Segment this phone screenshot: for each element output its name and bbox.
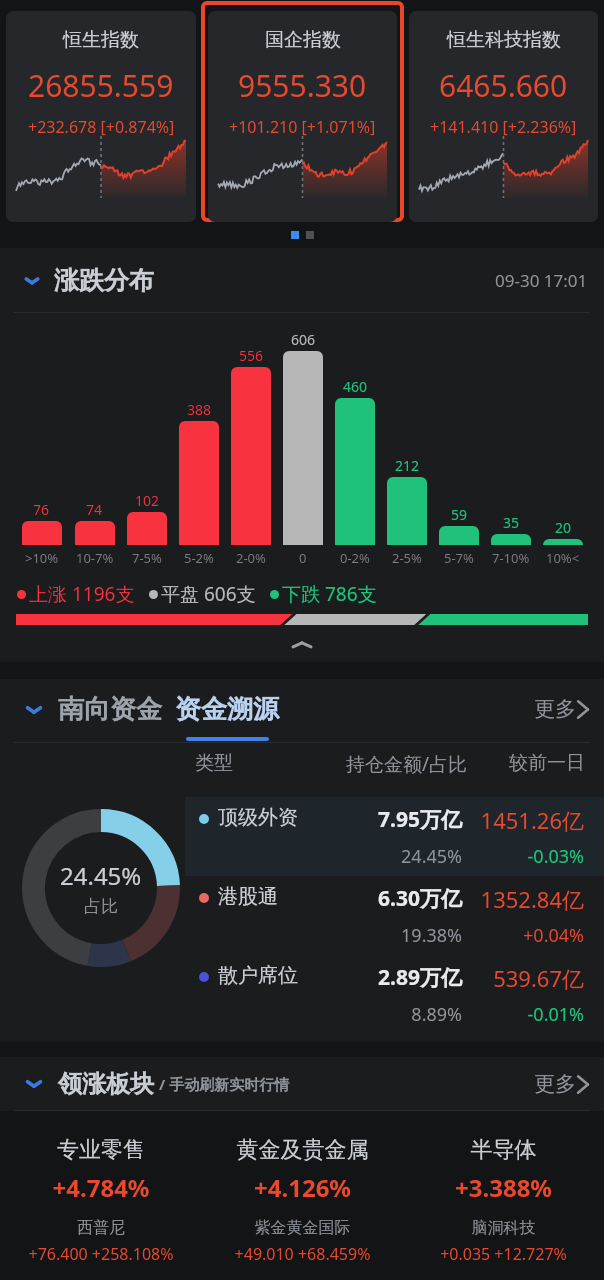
staticText: 0	[299, 549, 307, 567]
button[interactable]: 专业零售	[0, 1111, 202, 1280]
staticText: 紫金黄金国际	[202, 1218, 403, 1238]
staticText: +141.410 [+2.236%]	[430, 116, 577, 138]
button[interactable]: 港股通	[0, 876, 604, 955]
button[interactable]: 资金溯源	[175, 693, 279, 726]
staticText: 24.45%	[60, 859, 142, 892]
staticText: 持仓金额/占比	[346, 751, 468, 775]
staticText: 领涨板块	[58, 1069, 154, 1099]
staticText: 5-2%	[184, 549, 214, 567]
staticText: 212	[395, 456, 420, 475]
button[interactable]: 恒生科技指数	[409, 11, 598, 222]
staticText: 74	[86, 500, 103, 519]
button[interactable]: 散户席位	[0, 955, 604, 1034]
staticText: 10%<	[546, 549, 580, 567]
staticText: 539.67亿	[448, 963, 584, 993]
staticText: 黄金及贵金属	[202, 1136, 403, 1164]
staticText: 下跌 786支	[282, 581, 377, 607]
staticText: 更多	[534, 1071, 576, 1097]
staticText: 26855.559	[28, 65, 174, 106]
button[interactable]: 恒生指数	[6, 11, 196, 222]
staticText: +4.126%	[202, 1171, 403, 1204]
staticText: +49.010 +68.459%	[202, 1243, 403, 1265]
button[interactable]: 半导体	[403, 1111, 604, 1280]
staticText: 西普尼	[0, 1218, 202, 1238]
button[interactable]: 南向资金	[58, 693, 162, 726]
staticText: 港股通	[218, 884, 278, 909]
button[interactable]: 更多	[534, 696, 590, 722]
staticText: +0.035 +12.727%	[403, 1243, 604, 1265]
staticText: 更多	[534, 696, 576, 722]
staticText: 6.30万亿	[330, 884, 462, 913]
button[interactable]: 涨跌分布	[0, 248, 604, 312]
staticText: 专业零售	[0, 1136, 202, 1164]
button[interactable]: 国企指数	[208, 11, 397, 222]
staticText: 556	[239, 346, 264, 365]
staticText: 606	[291, 330, 316, 349]
staticText: 59	[451, 505, 468, 524]
staticText: 1352.84亿	[448, 884, 584, 914]
staticText: 顶级外资	[218, 805, 298, 830]
button[interactable]: 黄金及贵金属	[202, 1111, 403, 1280]
staticText: 0-2%	[340, 549, 370, 567]
staticText: 涨跌分布	[54, 265, 154, 296]
staticText: +3.388%	[403, 1171, 604, 1204]
staticText: 7-10%	[492, 549, 530, 567]
staticText: -0.01%	[448, 1002, 584, 1027]
staticText: 9555.330	[238, 65, 367, 106]
staticText: 恒生指数	[63, 28, 139, 52]
staticText: 20	[555, 518, 572, 537]
staticText: 1451.26亿	[448, 805, 584, 835]
staticText: +101.210 [+1.071%]	[229, 116, 376, 138]
staticText: 09-30 17:01	[495, 269, 588, 292]
staticText: 102	[135, 491, 160, 510]
staticText: 76	[33, 500, 50, 519]
staticText: 类型	[195, 751, 233, 775]
staticText: 19.38%	[330, 923, 462, 948]
staticText: 35	[503, 513, 520, 532]
staticText: 半导体	[403, 1136, 604, 1164]
staticText: 5-7%	[444, 549, 474, 567]
staticText: 2.89万亿	[330, 963, 462, 992]
staticText: 恒生科技指数	[447, 28, 561, 52]
staticText: 平盘 606支	[161, 581, 256, 607]
staticText: 散户席位	[218, 963, 298, 988]
staticText: 占比	[84, 896, 118, 917]
staticText: 较前一日	[509, 751, 585, 775]
staticText: 460	[343, 377, 368, 396]
staticText: 2-5%	[392, 549, 422, 567]
staticText: 7.95万亿	[330, 805, 462, 834]
button[interactable]: 更多	[534, 1071, 590, 1097]
staticText: 6465.660	[439, 65, 568, 106]
staticText: +4.784%	[0, 1171, 202, 1204]
button[interactable]: Collapse	[292, 639, 312, 651]
staticText: 8.89%	[330, 1002, 462, 1027]
staticText: 7-5%	[132, 549, 162, 567]
staticText: -0.03%	[448, 844, 584, 869]
staticText: 2-0%	[236, 549, 266, 567]
staticText: 国企指数	[265, 28, 341, 52]
staticText: 上涨 1196支	[29, 581, 135, 607]
staticText: +76.400 +258.108%	[0, 1243, 202, 1265]
staticText: 10-7%	[76, 549, 114, 567]
staticText: +0.04%	[448, 923, 584, 948]
staticText: 脑洞科技	[403, 1218, 604, 1238]
staticText: +232.678 [+0.874%]	[28, 116, 175, 138]
staticText: >10%	[25, 549, 59, 567]
staticText: / 手动刷新实时行情	[159, 1074, 290, 1094]
staticText: 388	[187, 400, 212, 419]
staticText: 24.45%	[330, 844, 462, 869]
button[interactable]: 顶级外资	[0, 797, 604, 876]
